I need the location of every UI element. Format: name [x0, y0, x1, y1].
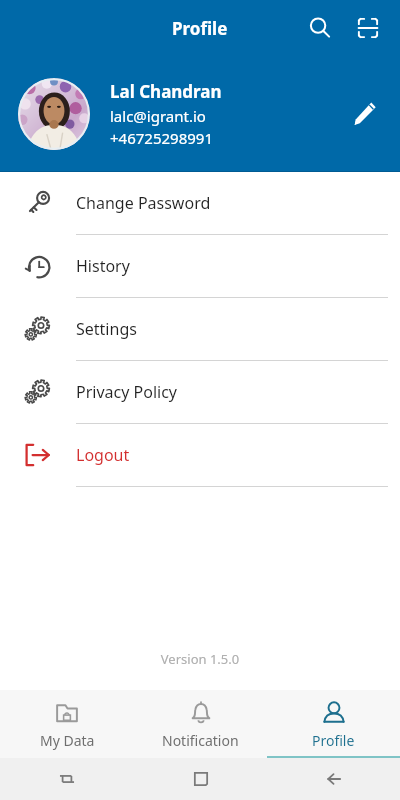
button[interactable]: My Data [0, 690, 134, 758]
staticText: Notification [162, 731, 239, 750]
staticText: Version 1.5.0 [0, 650, 400, 668]
staticText: Lal Chandran [110, 80, 222, 103]
staticText: Change Password [76, 192, 211, 214]
staticText: Logout [76, 444, 130, 466]
staticText: lalc@igrant.io [110, 106, 206, 126]
button[interactable]: Settings [0, 298, 400, 360]
staticText: Privacy Policy [76, 381, 177, 403]
button[interactable]: Profile [267, 690, 400, 758]
button[interactable]: Change Password [0, 172, 400, 234]
staticText: +46725298991 [110, 128, 213, 148]
staticText: Profile [312, 731, 355, 750]
button[interactable]: Scan [344, 4, 392, 52]
staticText: Profile [172, 17, 228, 40]
button[interactable]: Privacy Policy [0, 361, 400, 423]
button[interactable]: Notification [134, 690, 267, 758]
staticText: Settings [76, 318, 137, 340]
staticText: My Data [40, 731, 95, 750]
button[interactable]: Edit profile [336, 86, 392, 142]
staticText: History [76, 255, 130, 277]
button[interactable]: Search [296, 4, 344, 52]
button[interactable]: Profile photo [18, 78, 90, 150]
button[interactable]: Logout [0, 424, 400, 486]
button[interactable]: History [0, 235, 400, 297]
